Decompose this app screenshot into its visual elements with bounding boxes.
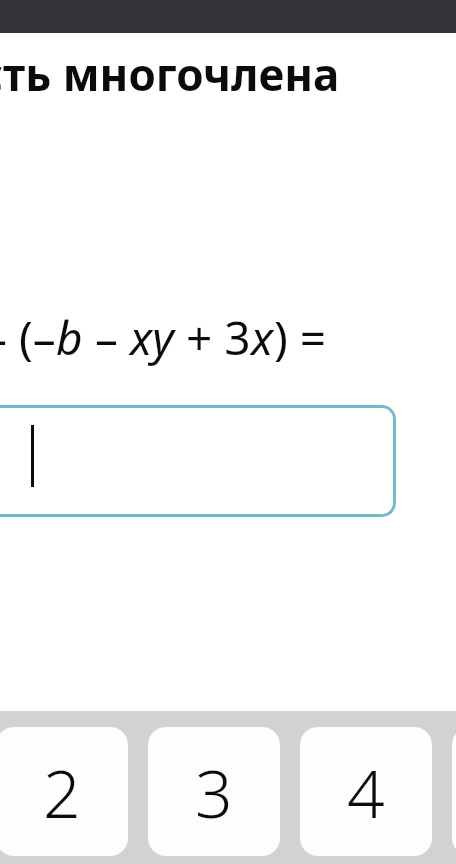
button[interactable]: 5 [452, 727, 456, 856]
staticText: 3 [195, 747, 233, 837]
staticText: 2 [43, 747, 81, 837]
staticText: 4 [347, 747, 385, 837]
staticText: ) = [274, 306, 327, 369]
staticText: – (– [0, 306, 56, 369]
button[interactable]: 3 [148, 727, 280, 856]
button[interactable]: Answer input [0, 405, 396, 517]
staticText: b [56, 306, 83, 369]
staticText: сть многочлена [0, 44, 340, 96]
staticText: + 3 [174, 306, 251, 369]
staticText: xy [130, 306, 174, 369]
staticText: x [251, 306, 274, 369]
staticText: – [83, 306, 130, 369]
button[interactable]: 2 [0, 727, 128, 856]
button[interactable]: 4 [300, 727, 432, 856]
